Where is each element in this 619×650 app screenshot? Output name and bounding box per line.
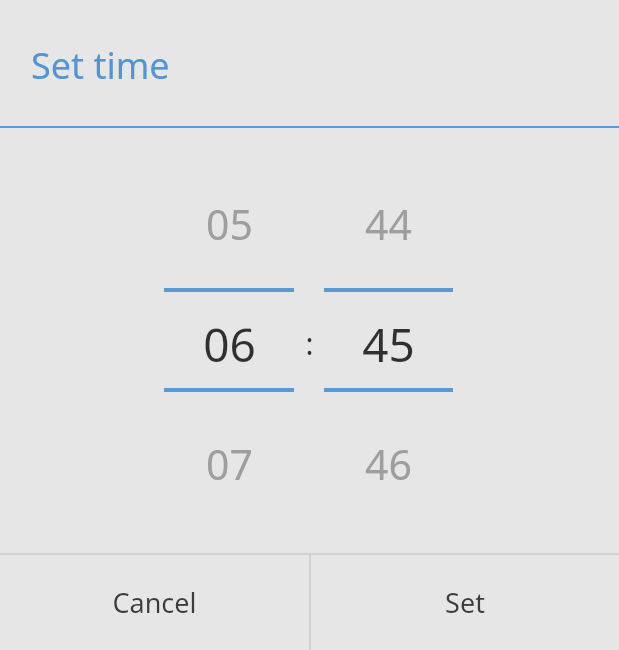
button[interactable]: 45 [324,313,453,373]
staticText: 46 [365,436,412,488]
button[interactable]: Cancel [0,555,309,650]
staticText: 06 [203,313,256,373]
staticText: : [305,323,314,364]
button[interactable]: Set [311,555,619,650]
staticText: 05 [206,196,253,248]
staticText: 44 [365,196,412,248]
staticText: Set time [31,41,170,90]
button[interactable]: 06 [164,313,294,373]
staticText: Cancel [112,584,197,621]
staticText: 07 [206,436,253,488]
staticText: Set [445,584,485,621]
staticText: 45 [362,313,415,373]
